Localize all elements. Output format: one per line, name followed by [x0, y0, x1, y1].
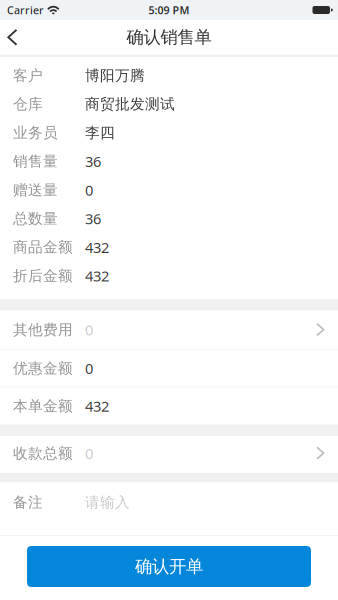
- staticText: 确认开单: [135, 556, 203, 577]
- staticText: 优惠金额: [13, 359, 73, 377]
- staticText: Carrier: [7, 3, 44, 17]
- staticText: 0: [85, 444, 93, 463]
- staticText: 0: [85, 359, 93, 378]
- staticText: 折后金额: [13, 267, 73, 285]
- staticText: 业务员: [13, 124, 58, 142]
- staticText: 5:09 PM: [148, 3, 189, 17]
- staticText: 确认销售单: [126, 27, 211, 48]
- staticText: 仓库: [13, 95, 43, 113]
- staticText: 客户: [13, 67, 43, 85]
- staticText: 其他费用: [13, 321, 73, 339]
- staticText: 本单金额: [13, 397, 73, 415]
- staticText: 赠送量: [13, 181, 58, 199]
- staticText: 备注: [13, 493, 43, 511]
- staticText: 432: [85, 396, 109, 416]
- button[interactable]: 其他费用: [0, 311, 338, 349]
- button[interactable]: 收款总额: [0, 436, 338, 473]
- staticText: 36: [85, 209, 101, 228]
- button[interactable]: Back: [0, 20, 32, 54]
- staticText: 432: [85, 266, 109, 286]
- button[interactable]: 确认开单: [27, 546, 311, 587]
- staticText: 432: [85, 237, 109, 257]
- staticText: 0: [85, 180, 93, 200]
- staticText: 销售量: [13, 152, 58, 170]
- staticText: 总数量: [13, 210, 58, 228]
- staticText: 请输入: [85, 493, 130, 511]
- staticText: 36: [85, 152, 101, 171]
- staticText: 商贸批发测试: [85, 95, 175, 113]
- staticText: 李四: [85, 124, 115, 142]
- staticText: 博阳万腾: [85, 67, 145, 85]
- staticText: 0: [85, 320, 93, 340]
- staticText: 商品金额: [13, 238, 73, 256]
- staticText: 收款总额: [13, 444, 73, 462]
